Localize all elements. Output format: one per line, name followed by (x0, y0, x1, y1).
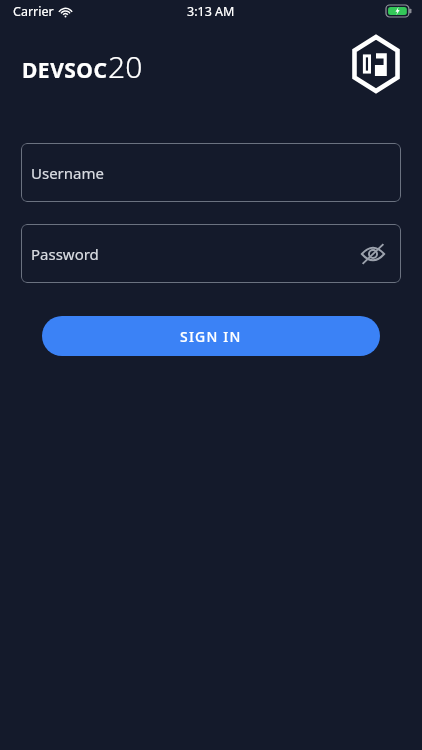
staticText: Password (31, 244, 99, 264)
button[interactable]: Show password (357, 238, 389, 270)
staticText: 20 (108, 46, 143, 87)
button[interactable]: Username (21, 143, 401, 202)
staticText: SIGN IN (180, 327, 242, 346)
button[interactable]: SIGN IN (42, 316, 380, 356)
staticText: DEVSOC (22, 56, 108, 85)
staticText: Username (31, 163, 104, 183)
staticText: 3:13 AM (187, 3, 235, 20)
staticText: Carrier (13, 3, 54, 20)
button[interactable]: Password (21, 224, 401, 283)
other: DevSoc logo (349, 37, 403, 91)
